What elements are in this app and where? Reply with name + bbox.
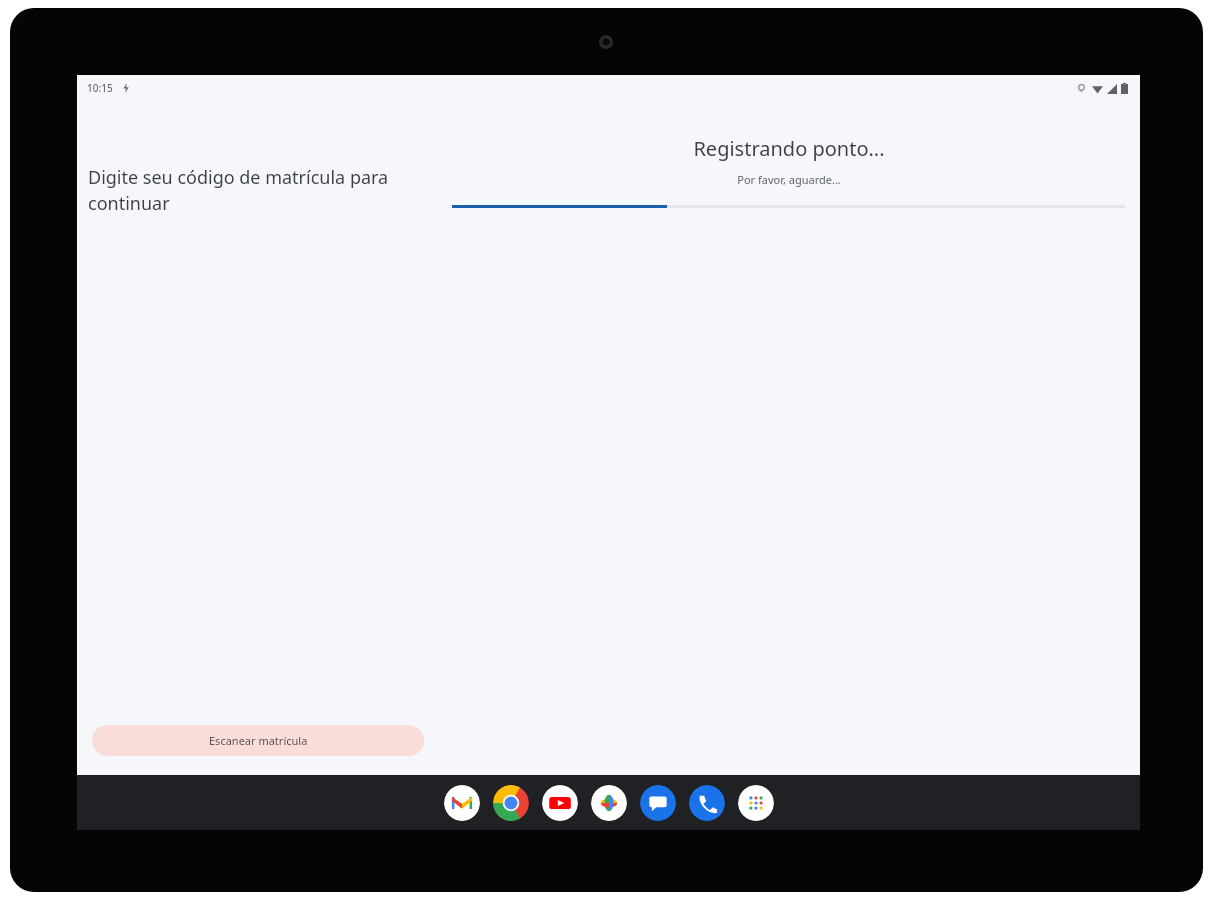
button[interactable]: Messages: [640, 785, 676, 821]
button[interactable]: Chrome: [493, 785, 529, 821]
button[interactable]: Google Photos: [591, 785, 627, 821]
button[interactable]: YouTube: [542, 785, 578, 821]
staticText: Escanear matrícula: [209, 733, 308, 748]
staticText: Por favor, aguarde...: [737, 172, 841, 187]
staticText: Registrando ponto...: [693, 135, 885, 162]
staticText: 10:15: [87, 81, 113, 95]
staticText: Digite seu código de matrícula para cont…: [88, 165, 418, 216]
button[interactable]: All apps: [738, 785, 774, 821]
button[interactable]: Phone: [689, 785, 725, 821]
button[interactable]: Escanear matrícula: [92, 725, 424, 756]
button[interactable]: Gmail: [444, 785, 480, 821]
